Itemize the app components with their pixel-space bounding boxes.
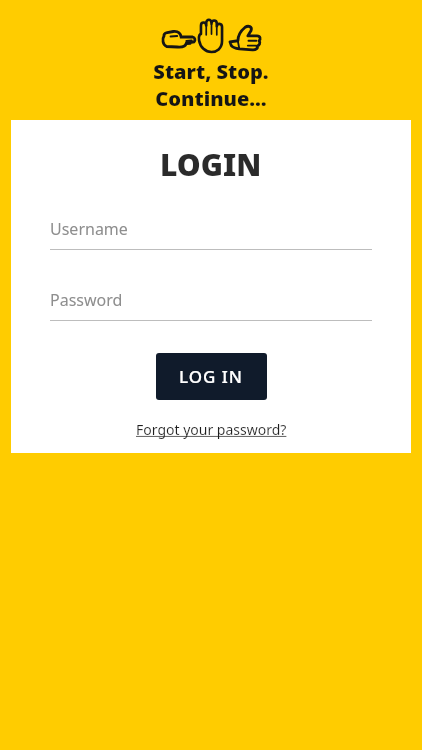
staticText: Start, Stop. <box>153 58 269 85</box>
staticText: LOGIN <box>160 144 262 185</box>
button[interactable]: Username <box>50 218 372 250</box>
staticText: Password <box>50 289 123 311</box>
staticText: LOG IN <box>179 365 244 388</box>
button[interactable]: LOG IN <box>156 353 267 400</box>
staticText: Forgot your password? <box>136 420 287 439</box>
staticText: Continue… <box>155 85 267 112</box>
button[interactable]: Forgot your password? <box>136 420 287 439</box>
button[interactable]: Password <box>50 289 372 321</box>
staticText: Username <box>50 218 128 240</box>
